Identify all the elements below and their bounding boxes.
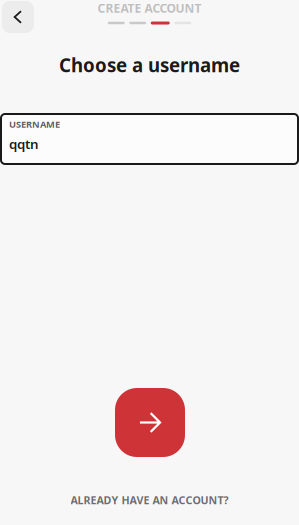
staticText: qqtn	[9, 135, 39, 153]
staticText: Choose a username	[59, 53, 240, 77]
staticText: ALREADY HAVE AN ACCOUNT?	[70, 493, 228, 507]
button[interactable]: Back	[2, 1, 34, 33]
staticText: CREATE ACCOUNT	[97, 0, 201, 16]
staticText: USERNAME	[9, 118, 60, 130]
button[interactable]: Continue	[115, 388, 185, 457]
button[interactable]: ALREADY HAVE AN ACCOUNT?	[0, 489, 299, 511]
